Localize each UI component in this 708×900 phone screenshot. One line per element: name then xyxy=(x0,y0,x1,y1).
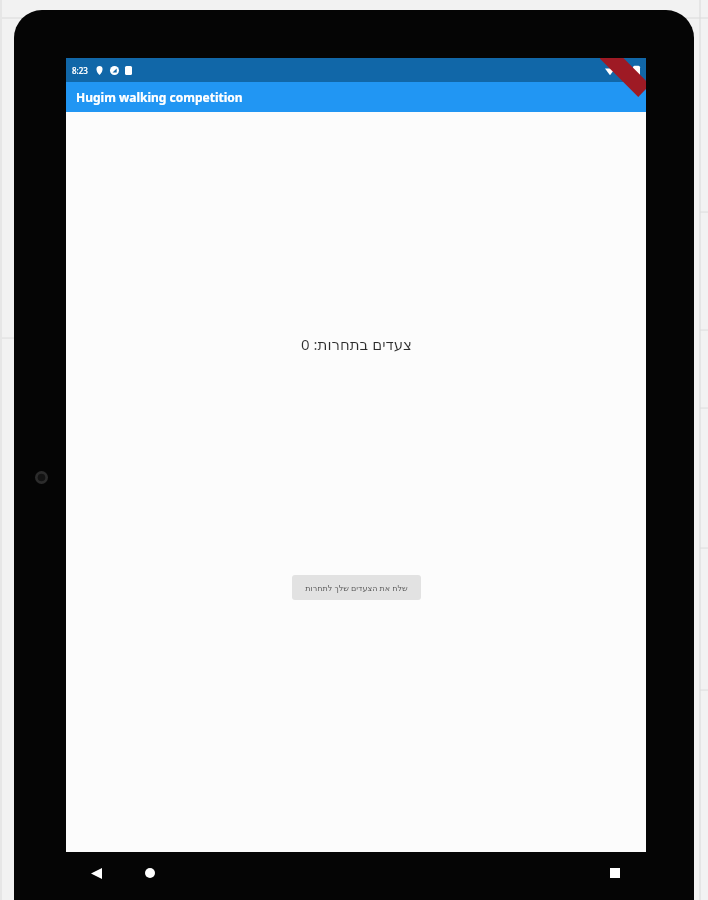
staticText: 8:23 xyxy=(72,65,88,76)
button[interactable]: Recent apps xyxy=(603,861,627,885)
button[interactable]: Back xyxy=(84,861,108,885)
staticText: צעדים בתחרות: 0 xyxy=(301,334,412,354)
staticText: Hugim walking competition xyxy=(76,89,243,105)
button[interactable]: Home xyxy=(138,861,162,885)
button[interactable]: שלח את הצעדים שלך לתחרות xyxy=(292,575,421,600)
staticText: שלח את הצעדים שלך לתחרות xyxy=(305,582,408,593)
